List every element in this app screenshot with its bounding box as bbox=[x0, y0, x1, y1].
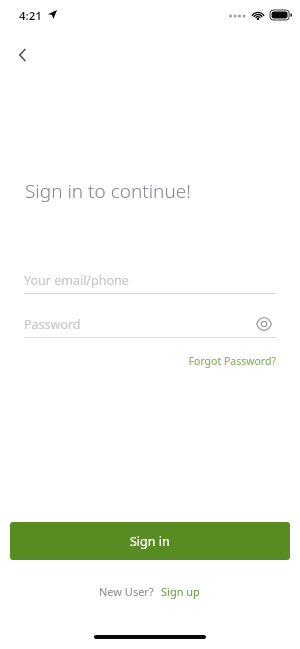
button[interactable]: Password bbox=[24, 310, 276, 338]
staticText: Sign in to continue! bbox=[25, 178, 191, 204]
staticText: 4:21 bbox=[19, 8, 42, 24]
button[interactable]: Forgot Password? bbox=[180, 352, 276, 370]
staticText: Sign up bbox=[161, 584, 200, 599]
button[interactable]: Sign in bbox=[10, 522, 290, 560]
staticText: Password bbox=[24, 316, 81, 333]
staticText: New User? bbox=[99, 584, 154, 599]
button[interactable]: Your email/phone bbox=[24, 266, 276, 294]
button[interactable]: Show password bbox=[250, 310, 278, 338]
staticText: Your email/phone bbox=[24, 272, 129, 289]
staticText: Sign in bbox=[130, 533, 170, 550]
button[interactable]: Back bbox=[6, 38, 40, 72]
staticText: Forgot Password? bbox=[188, 354, 276, 368]
button[interactable]: Sign up bbox=[160, 582, 201, 601]
